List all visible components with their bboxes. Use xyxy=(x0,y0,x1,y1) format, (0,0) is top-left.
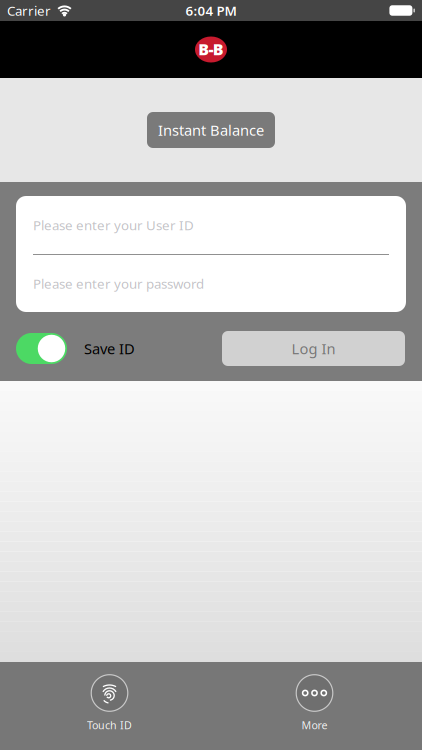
button[interactable]: Please enter your User ID xyxy=(16,196,406,254)
staticText: Please enter your password xyxy=(33,275,204,292)
staticText: B-B xyxy=(198,38,224,60)
button[interactable]: More xyxy=(211,662,422,732)
staticText: Log In xyxy=(291,339,335,358)
button[interactable] xyxy=(16,333,67,364)
staticText: More xyxy=(301,718,327,732)
staticText: Save ID xyxy=(84,339,135,358)
staticText: Instant Balance xyxy=(158,120,264,140)
staticText: Carrier xyxy=(7,2,51,19)
button[interactable]: Please enter your password xyxy=(16,255,406,312)
staticText: Please enter your User ID xyxy=(33,216,194,234)
staticText: 6:04 PM xyxy=(185,2,236,19)
button[interactable]: Log In xyxy=(222,331,405,366)
button[interactable]: Instant Balance xyxy=(147,112,275,148)
button[interactable]: Touch ID xyxy=(0,662,211,732)
staticText: Touch ID xyxy=(87,718,132,732)
